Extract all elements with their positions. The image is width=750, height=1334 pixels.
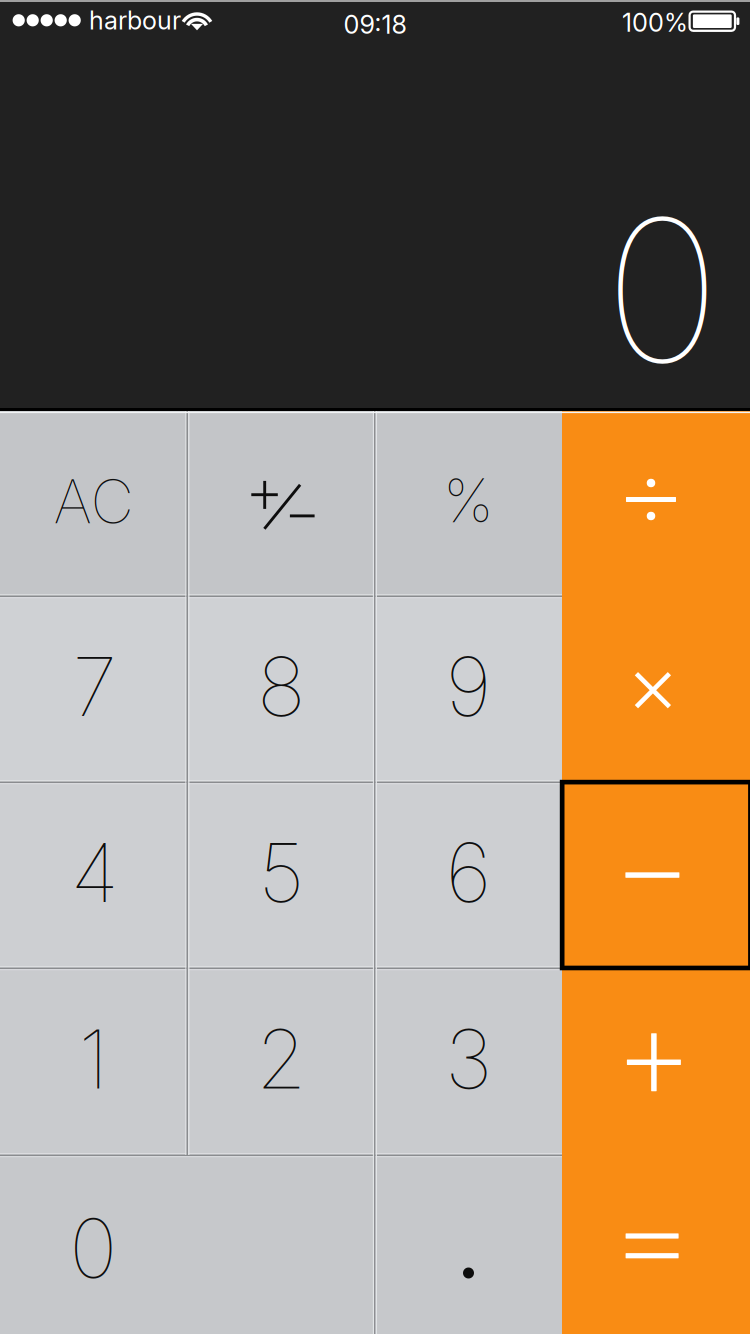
staticText: 09:18: [343, 9, 406, 40]
staticText: 4: [70, 823, 118, 922]
staticText: AC: [53, 465, 133, 538]
staticText: 9: [445, 637, 491, 736]
button[interactable]: 1: [0, 968, 187, 1155]
staticText: 100%: [622, 7, 688, 38]
button[interactable]: Plus minus: [188, 411, 375, 596]
staticText: 6: [445, 823, 491, 922]
staticText: 0: [69, 1199, 117, 1297]
button[interactable]: Multiply: [562, 596, 750, 782]
button[interactable]: %: [375, 411, 562, 596]
staticText: 7: [72, 637, 116, 736]
button[interactable]: 3: [375, 968, 562, 1155]
staticText: 2: [256, 1010, 307, 1108]
button[interactable]: Divide: [562, 411, 750, 596]
staticText: %: [443, 464, 494, 537]
button[interactable]: Equals: [562, 1155, 750, 1334]
button[interactable]: Add: [562, 968, 750, 1155]
staticText: 1: [78, 1010, 108, 1108]
staticText: 5: [258, 823, 304, 922]
staticText: 3: [445, 1010, 492, 1108]
button[interactable]: 8: [188, 596, 375, 782]
button[interactable]: 4: [0, 782, 187, 968]
staticText: 0: [604, 171, 721, 409]
button[interactable]: 2: [188, 968, 375, 1155]
button[interactable]: 5: [188, 782, 375, 968]
button[interactable]: Subtract: [562, 782, 750, 968]
button[interactable]: Subtract, selected: [560, 780, 750, 970]
button[interactable]: 6: [375, 782, 562, 968]
staticText: 8: [257, 637, 306, 736]
button[interactable]: 9: [375, 596, 562, 782]
button[interactable]: AC: [0, 411, 187, 596]
staticText: harbour: [89, 5, 181, 36]
button[interactable]: Decimal point: [375, 1155, 562, 1334]
button[interactable]: 7: [0, 596, 187, 782]
button[interactable]: 0: [0, 1155, 375, 1334]
